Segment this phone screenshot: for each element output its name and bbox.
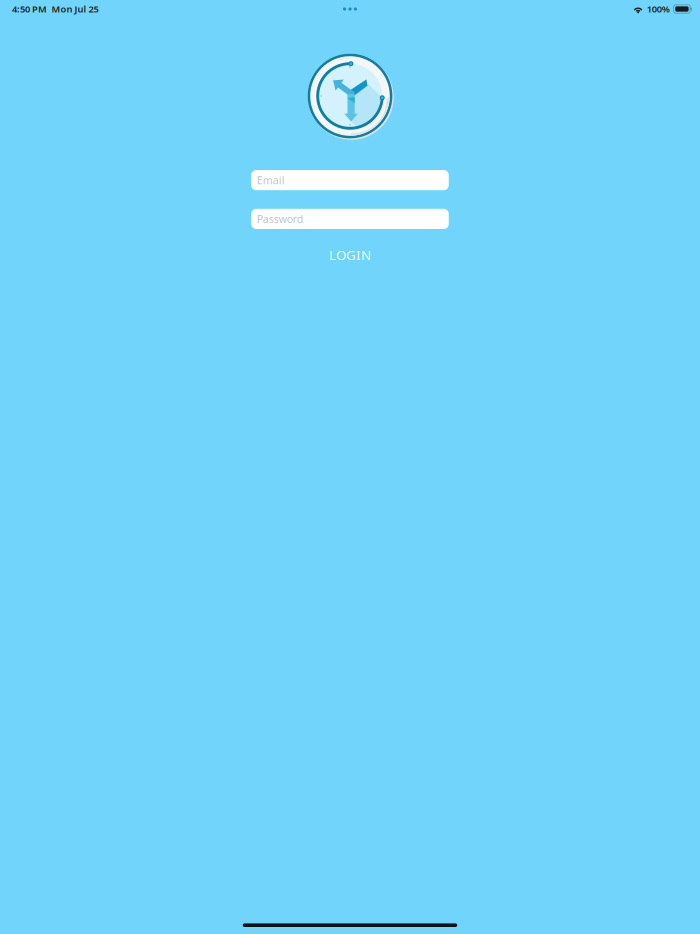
staticText: Password <box>257 212 304 226</box>
button[interactable]: Email <box>251 170 449 190</box>
staticText: 100% <box>647 3 670 15</box>
staticText: LOGIN <box>329 246 371 264</box>
staticText: 4:50 PM <box>12 3 47 15</box>
staticText: Email <box>257 173 285 187</box>
button[interactable]: Password <box>251 209 449 229</box>
button[interactable]: LOGIN <box>311 241 389 269</box>
staticText: Mon Jul 25 <box>51 3 98 15</box>
